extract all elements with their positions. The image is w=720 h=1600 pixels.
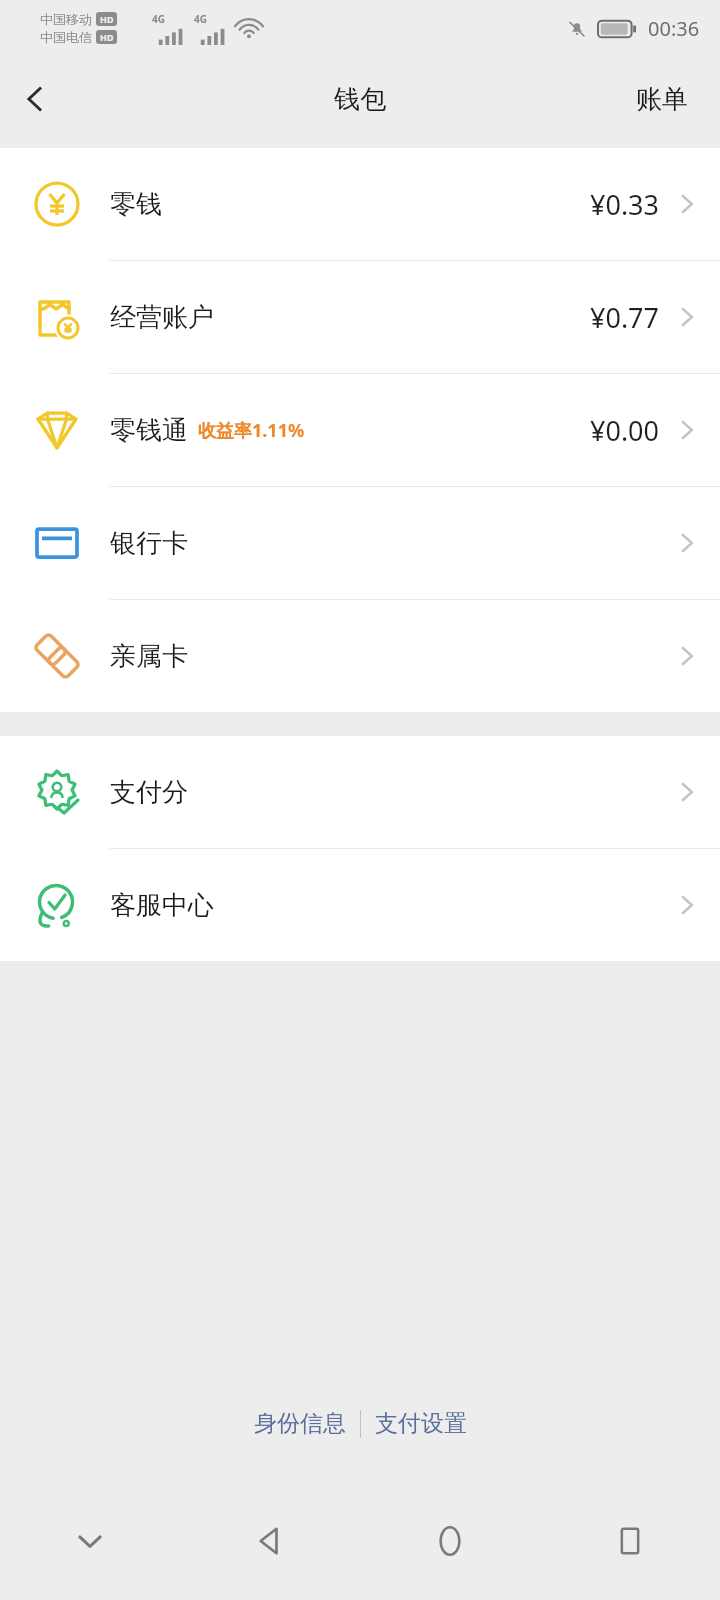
button[interactable]: 经营账户 [0,261,720,373]
button[interactable]: Home [360,1506,540,1576]
staticText: 支付设置 [375,1409,467,1438]
button[interactable]: 银行卡 [0,487,720,599]
button[interactable]: 支付设置 [361,1399,481,1448]
staticText: 中国电信 [40,29,92,45]
button[interactable]: 亲属卡 [0,600,720,712]
staticText: 银行卡 [110,527,188,560]
button[interactable]: 账单 [618,71,706,128]
staticText: 经营账户 [110,301,214,334]
staticText: 00:36 [648,15,700,42]
staticText: 钱包 [334,83,386,116]
staticText: 身份信息 [254,1409,346,1438]
staticText: ¥0.00 [590,412,660,449]
button[interactable]: 身份信息 [240,1399,360,1448]
staticText: 零钱通 [110,414,188,447]
button[interactable]: Back [180,1506,360,1576]
staticText: 客服中心 [110,889,214,922]
button[interactable]: 客服中心 [0,849,720,961]
button[interactable]: Back [0,64,70,134]
button[interactable]: 零钱通 [0,374,720,486]
staticText: HD [100,13,114,25]
staticText: 账单 [636,83,688,116]
staticText: 4G [194,12,207,26]
button[interactable]: Recents [540,1506,720,1576]
staticText: 中国移动 [40,11,92,27]
staticText: 支付分 [110,776,188,809]
staticText: HD [100,31,114,43]
staticText: 4G [152,12,165,26]
staticText: 亲属卡 [110,640,188,673]
button[interactable]: 零钱 [0,148,720,260]
staticText: ¥0.77 [590,299,660,336]
button[interactable]: 支付分 [0,736,720,848]
button[interactable]: Hide keyboard [0,1506,180,1576]
staticText: ¥0.33 [590,186,660,223]
staticText: 收益率1.11% [198,418,305,443]
staticText: 零钱 [110,188,162,221]
